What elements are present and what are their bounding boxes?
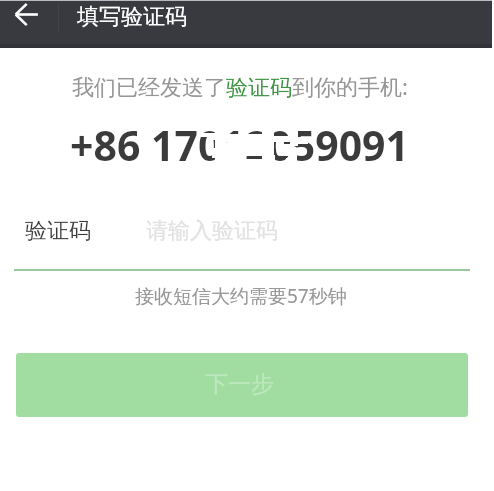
staticText: 下一步 — [205, 370, 274, 399]
staticText: 填写验证码 — [77, 3, 187, 31]
button[interactable]: Back — [4, 0, 50, 34]
staticText: 接收短信大约需要57秒钟 — [135, 283, 347, 309]
staticText: 验证码 — [25, 217, 91, 245]
button[interactable]: 验证码 — [14, 205, 470, 271]
staticText: 请输入验证码 — [146, 217, 278, 245]
staticText: +86 17012059091 — [70, 117, 409, 173]
staticText: 我们已经发送了验证码到你的手机: — [72, 71, 408, 101]
